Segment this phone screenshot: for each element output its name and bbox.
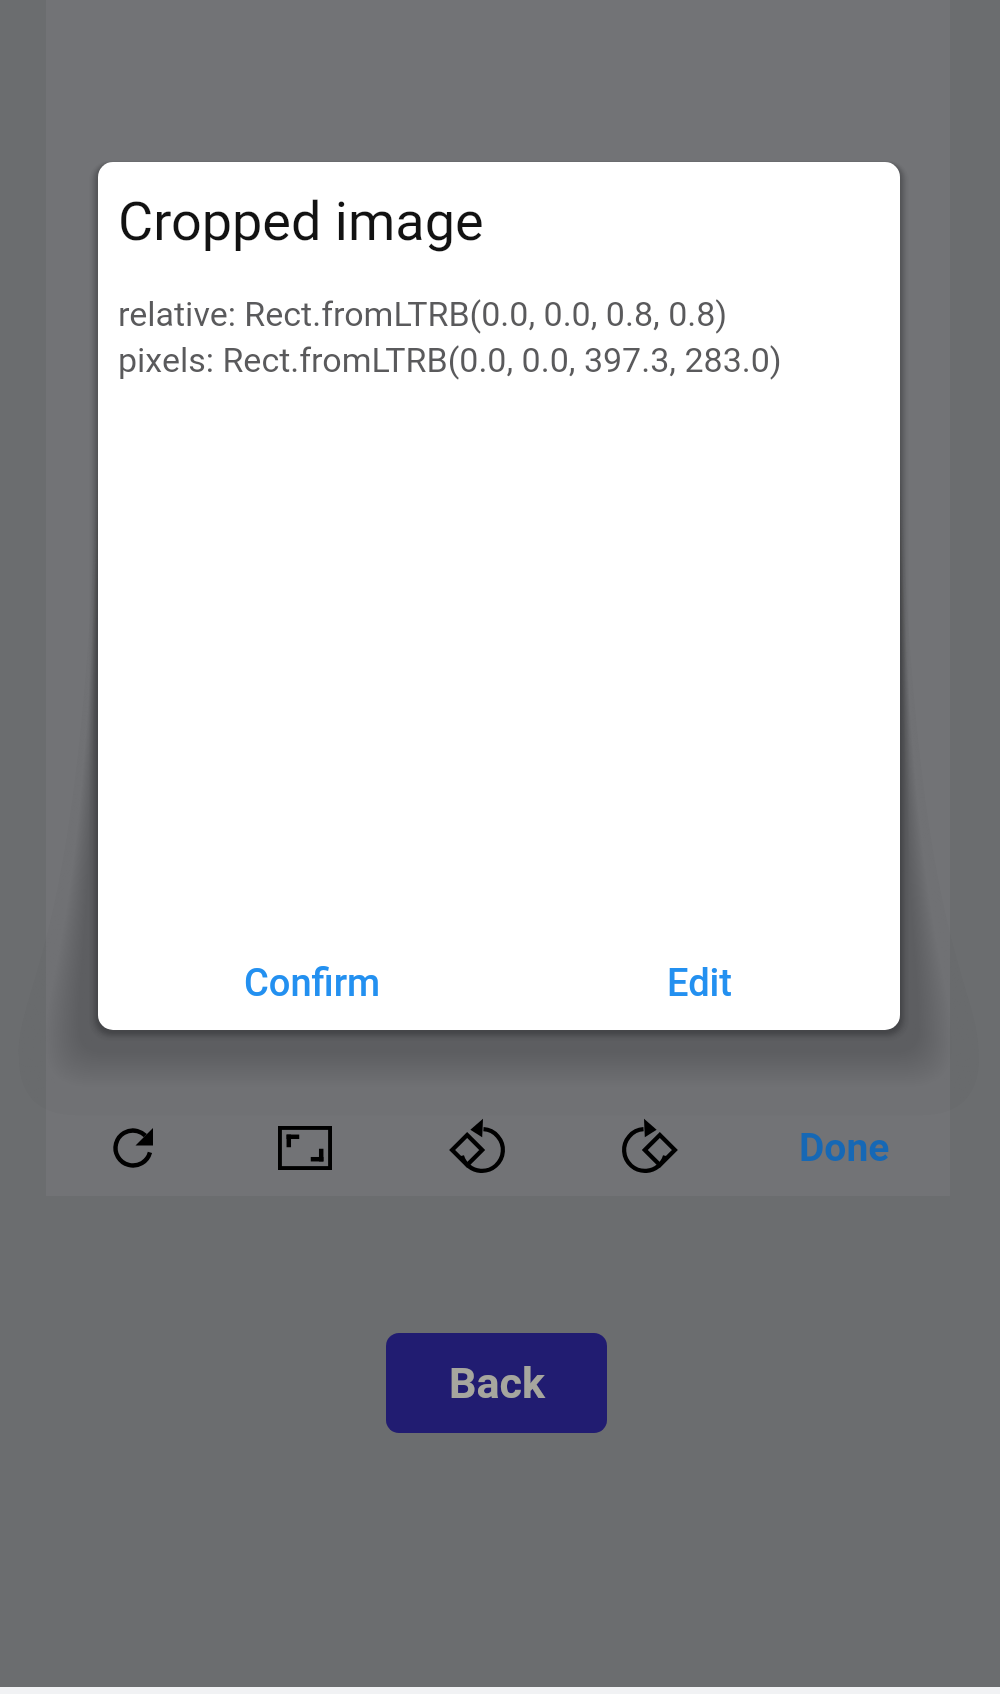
staticText: Cropped image — [118, 190, 484, 253]
staticText: Edit — [667, 961, 732, 1006]
staticText: Confirm — [244, 961, 381, 1006]
button[interactable]: Confirm — [98, 937, 499, 1030]
button[interactable]: Done — [799, 1096, 890, 1200]
button[interactable]: Aspect ratio — [257, 1100, 353, 1196]
staticText: Back — [449, 1358, 545, 1408]
staticText: relative: Rect.fromLTRB(0.0, 0.0, 0.8, 0… — [118, 294, 782, 381]
button[interactable]: Rotate left — [429, 1100, 525, 1196]
button[interactable]: Reset rotation — [85, 1100, 181, 1196]
button[interactable]: Rotate right — [601, 1100, 697, 1196]
staticText: Done — [799, 1125, 890, 1171]
button[interactable]: Back — [386, 1333, 607, 1433]
button[interactable]: Edit — [499, 937, 900, 1030]
